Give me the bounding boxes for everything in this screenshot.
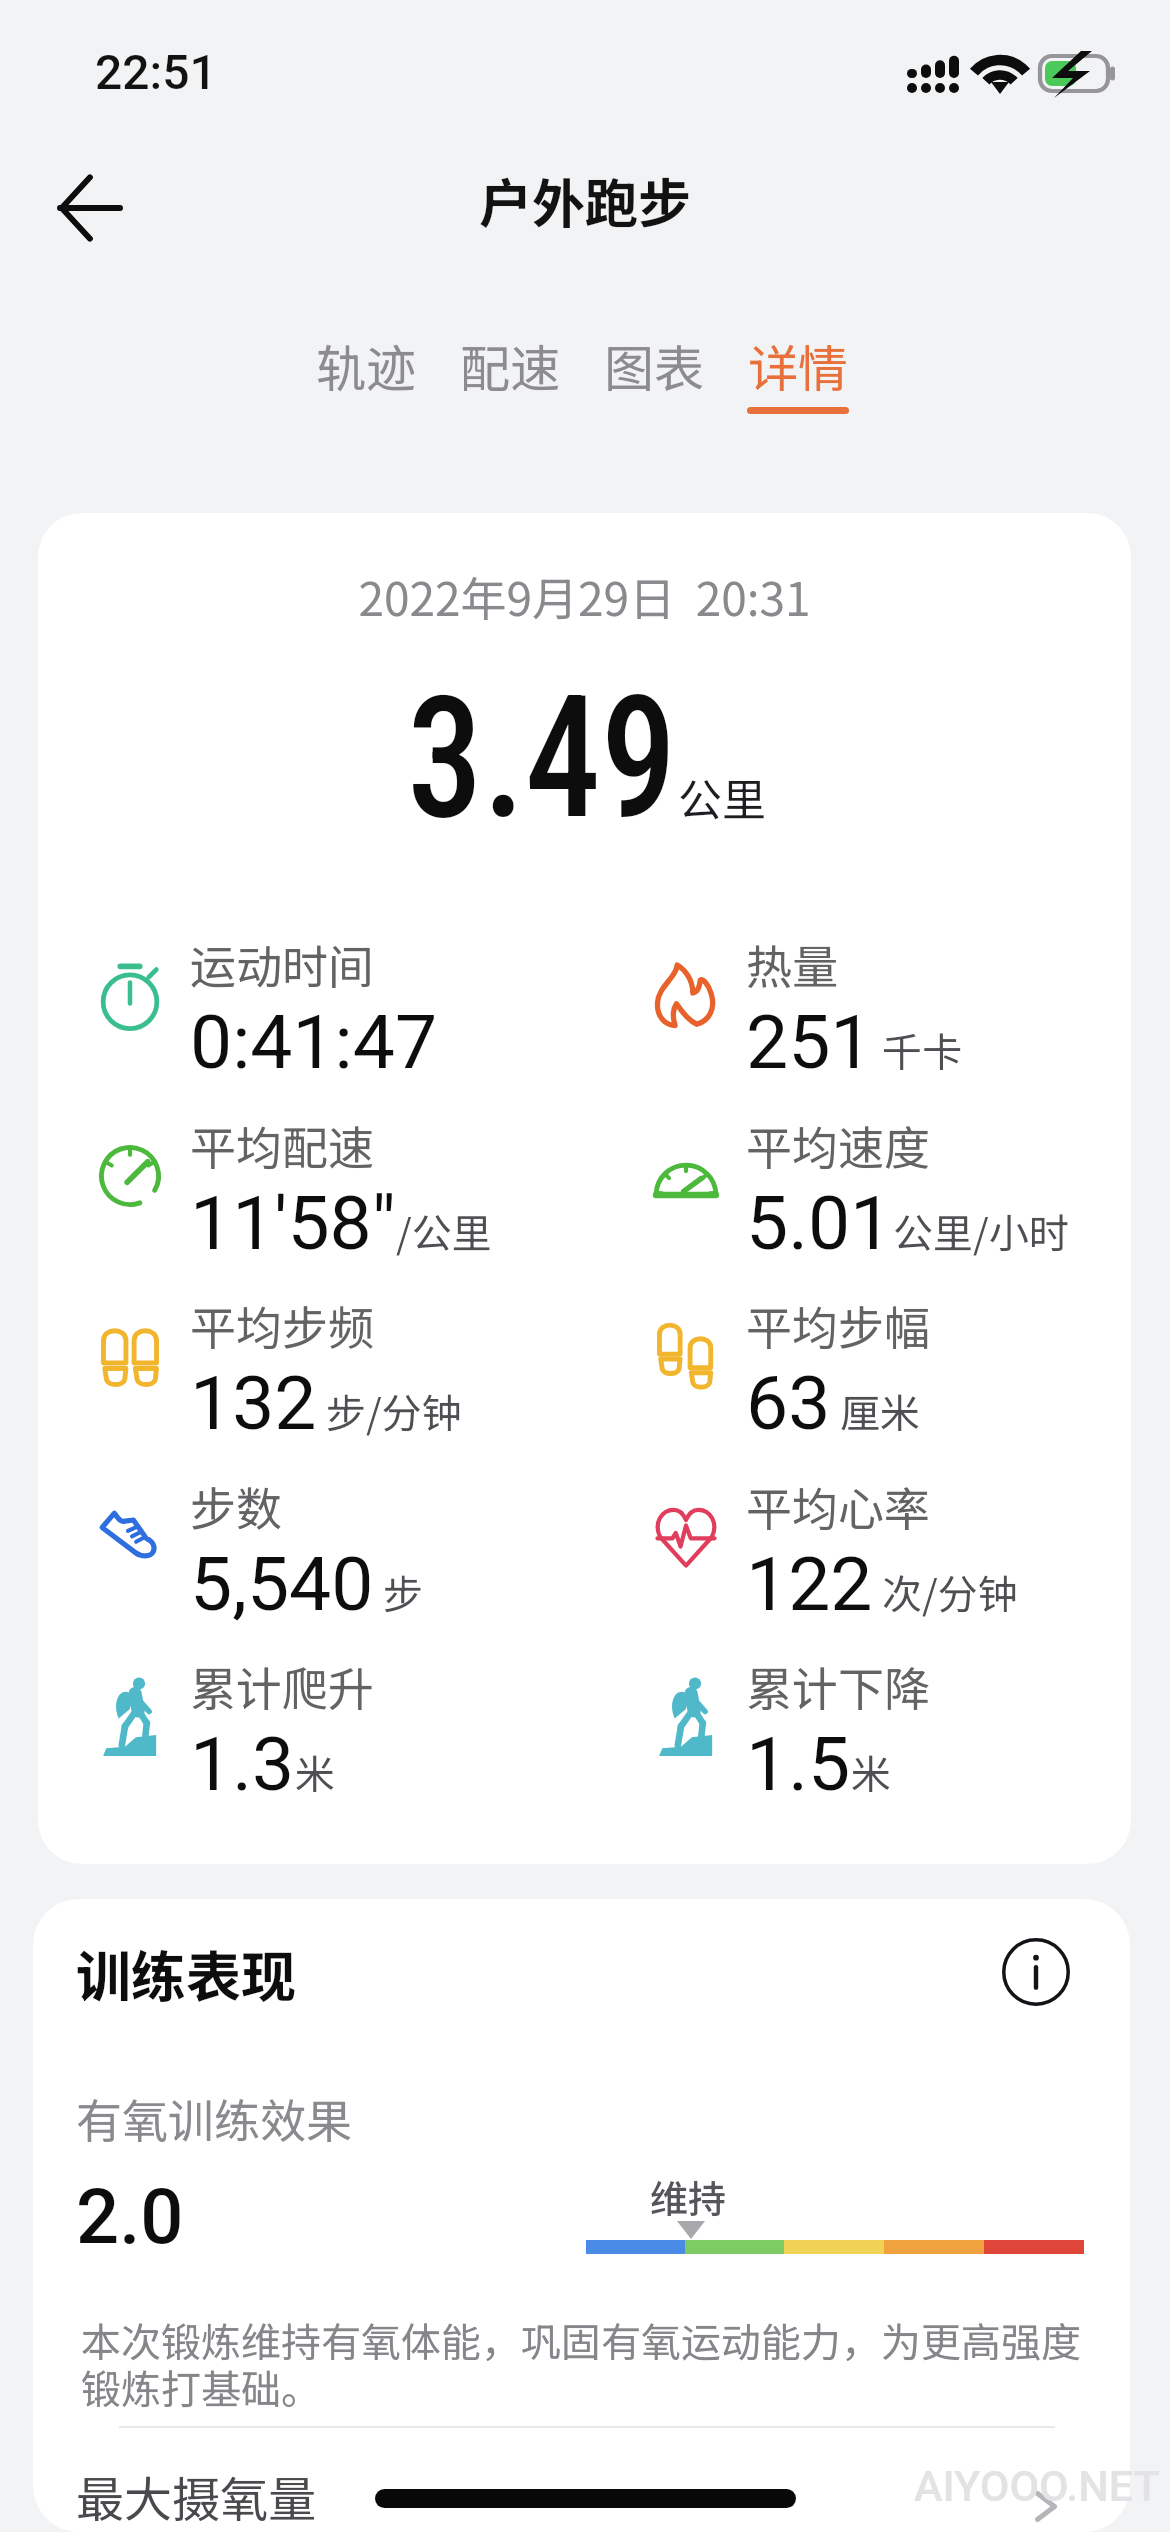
button[interactable]: 平均速度 (651, 1104, 1131, 1254)
staticText: 3.49 (407, 660, 677, 858)
staticText: 步数 (190, 1473, 282, 1540)
staticText: 轨迹 (316, 329, 416, 401)
staticText: 厘米 (831, 1382, 920, 1440)
staticText: 63 (746, 1359, 831, 1447)
staticText: 平均步幅 (746, 1292, 930, 1359)
button[interactable]: 配速 (438, 329, 582, 414)
staticText: AIYOOO.NET (914, 2461, 1160, 2511)
button[interactable]: 热量 (651, 923, 1131, 1073)
staticText: 详情 (748, 329, 848, 401)
staticText: 图表 (604, 329, 704, 401)
staticText: 累计爬升 (190, 1653, 374, 1720)
button[interactable]: 平均心率 (651, 1465, 1131, 1615)
staticText: 平均心率 (746, 1473, 930, 1540)
staticText: 热量 (746, 931, 838, 998)
staticText: 122 (746, 1540, 873, 1628)
staticText: 最大摄氧量 (76, 2461, 317, 2531)
staticText: 平均配速 (190, 1112, 374, 1179)
staticText: 平均速度 (746, 1112, 930, 1179)
staticText: 累计下降 (746, 1653, 930, 1720)
staticText: 22:51 (95, 44, 217, 100)
button[interactable]: 轨迹 (294, 329, 438, 414)
staticText: 千卡 (873, 1021, 962, 1079)
button[interactable]: 平均配速 (95, 1104, 595, 1254)
button[interactable]: 图表 (582, 329, 726, 414)
staticText: /公里 (396, 1202, 492, 1260)
staticText: 本次锻炼维持有氧体能，巩固有氧运动能力，为更高强度锻炼打基础。 (81, 2311, 1091, 2415)
staticText: 步 (374, 1563, 423, 1621)
button[interactable]: Info (999, 1935, 1073, 2009)
staticText: 5.01 (746, 1179, 893, 1267)
staticText: 训练表现 (76, 1933, 297, 2013)
staticText: 平均步频 (190, 1292, 374, 1359)
button[interactable]: 最大摄氧量 (33, 2439, 1130, 2532)
staticText: 11'58" (190, 1179, 396, 1267)
staticText: 251 (746, 998, 873, 1086)
button[interactable]: Back (32, 150, 148, 266)
staticText: 0:41:47 (190, 998, 438, 1086)
staticText: 1.5 (746, 1720, 851, 1808)
staticText: 2022年9月29日 20:31 (38, 563, 1131, 630)
staticText: 运动时间 (190, 931, 374, 998)
staticText: 配速 (460, 329, 560, 401)
button[interactable]: 累计下降 (651, 1645, 1131, 1795)
staticText: 户外跑步 (479, 162, 691, 239)
button[interactable]: 平均步幅 (651, 1284, 1131, 1434)
staticText: 公里/小时 (893, 1202, 1069, 1260)
staticText: 米 (851, 1743, 891, 1801)
staticText: 步/分钟 (317, 1382, 462, 1440)
button[interactable]: 步数 (95, 1465, 595, 1615)
staticText: 5,540 (190, 1540, 374, 1628)
button[interactable]: 累计爬升 (95, 1645, 595, 1795)
staticText: 1.3 (190, 1720, 295, 1808)
staticText: 有氧训练效果 (76, 2085, 352, 2152)
button[interactable]: 详情 (726, 329, 870, 414)
staticText: 132 (190, 1359, 317, 1447)
button[interactable]: 运动时间 (95, 923, 595, 1073)
staticText: 2.0 (76, 2172, 184, 2261)
button[interactable]: 平均步频 (95, 1284, 595, 1434)
staticText: 维持 (650, 2169, 727, 2224)
staticText: 公里 (678, 765, 766, 829)
staticText: 次/分钟 (873, 1563, 1018, 1621)
staticText: 米 (295, 1743, 335, 1801)
